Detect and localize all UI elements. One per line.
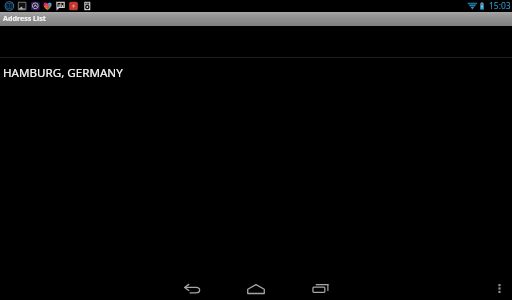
- button[interactable]: Address List: [0, 12, 512, 26]
- button[interactable]: Home: [239, 276, 273, 300]
- button[interactable]: HAMBURG, GERMANY: [0, 58, 512, 86]
- button[interactable]: Back: [175, 276, 209, 300]
- staticText: 15:03: [489, 0, 511, 12]
- button[interactable]: More options: [489, 276, 509, 300]
- button[interactable]: Recent apps: [303, 276, 337, 300]
- staticText: Address List: [3, 13, 46, 23]
- staticText: HAMBURG, GERMANY: [3, 65, 123, 81]
